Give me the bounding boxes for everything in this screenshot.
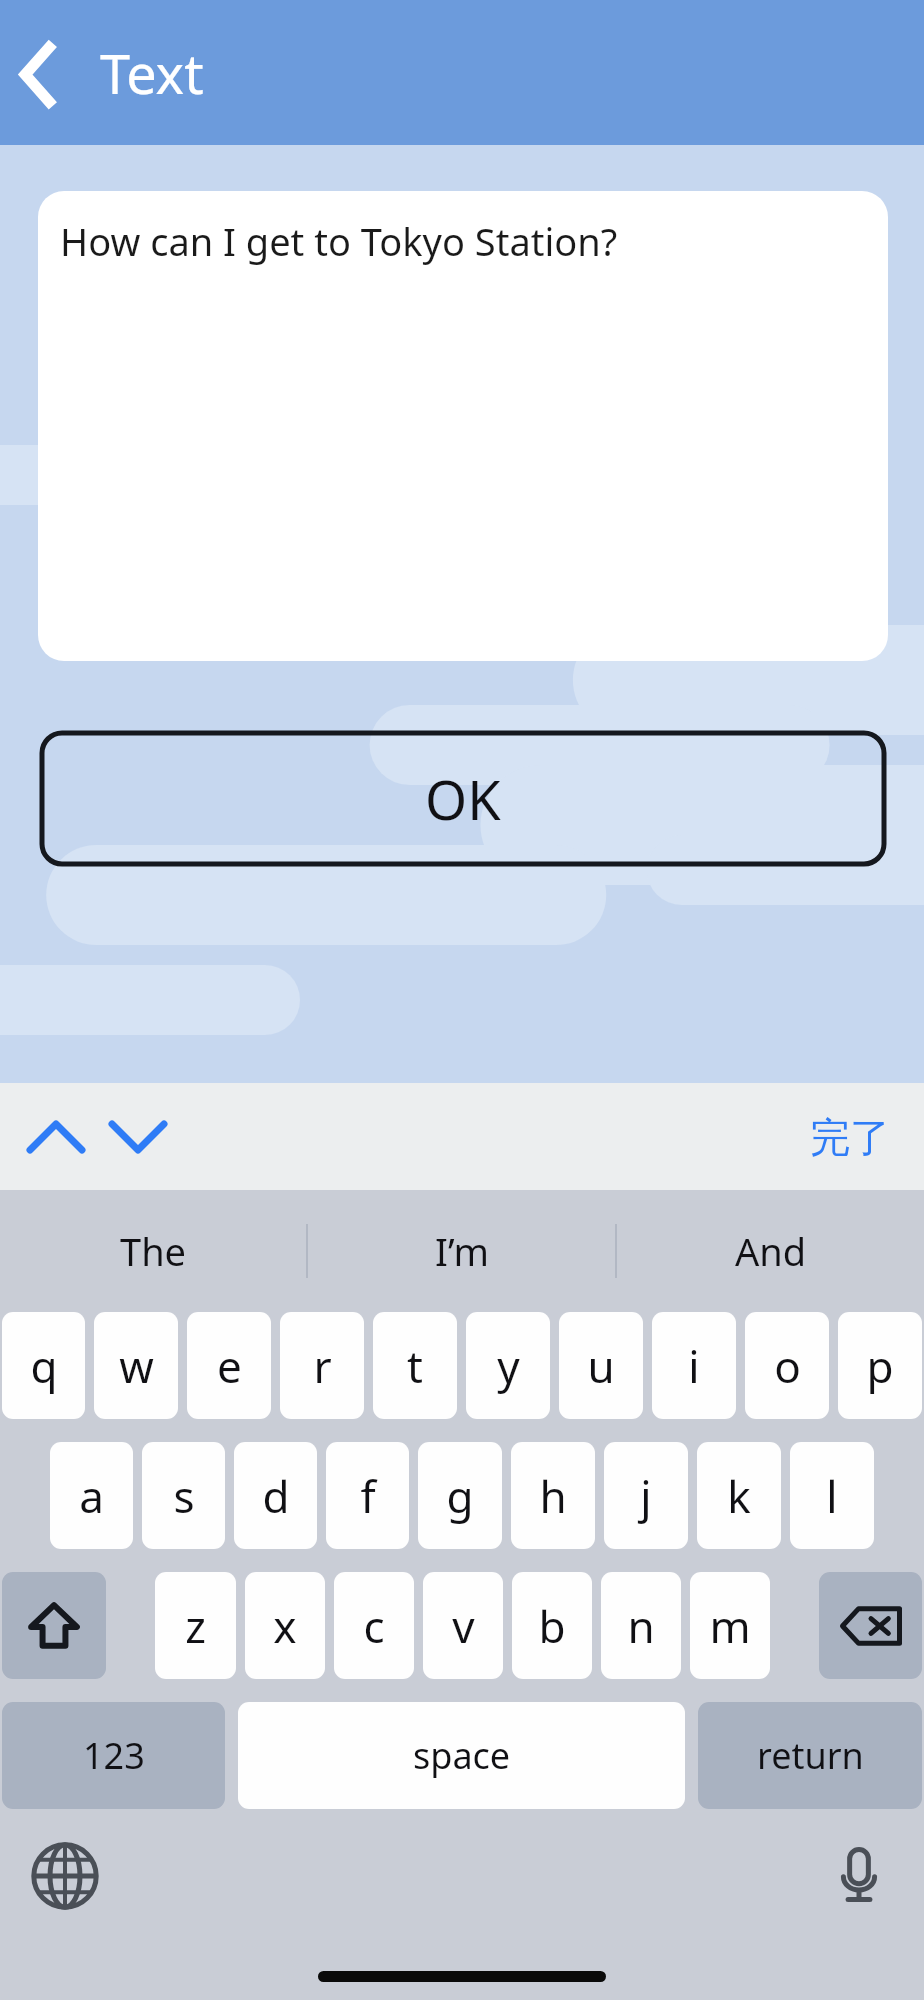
staticText: The <box>120 1225 187 1277</box>
button[interactable]: s <box>142 1442 225 1549</box>
button[interactable]: h <box>511 1442 595 1549</box>
button[interactable]: I’m <box>308 1190 615 1312</box>
button[interactable]: f <box>326 1442 409 1549</box>
staticText: And <box>735 1225 807 1277</box>
button[interactable]: And <box>617 1190 924 1312</box>
button[interactable]: n <box>601 1572 681 1679</box>
staticText: j <box>640 1466 652 1526</box>
staticText: 123 <box>83 1731 145 1780</box>
button[interactable]: Next field <box>104 1103 172 1171</box>
button[interactable]: a <box>50 1442 133 1549</box>
button[interactable]: j <box>604 1442 688 1549</box>
button[interactable]: x <box>245 1572 325 1679</box>
staticText: x <box>273 1596 297 1656</box>
button[interactable]: Previous field <box>22 1103 90 1171</box>
button[interactable]: Back <box>6 33 86 113</box>
button[interactable]: How can I get to Tokyo Station? <box>38 191 888 661</box>
button[interactable]: z <box>155 1572 236 1679</box>
staticText: c <box>363 1596 385 1656</box>
button[interactable]: space <box>238 1702 685 1809</box>
button[interactable]: d <box>234 1442 317 1549</box>
button[interactable]: p <box>838 1312 922 1419</box>
staticText: return <box>757 1731 864 1780</box>
button[interactable]: return <box>698 1702 922 1809</box>
staticText: o <box>774 1336 801 1396</box>
staticText: i <box>688 1336 700 1396</box>
staticText: z <box>185 1596 206 1656</box>
button[interactable]: b <box>512 1572 592 1679</box>
staticText: k <box>727 1466 751 1526</box>
button[interactable]: m <box>690 1572 770 1679</box>
staticText: w <box>119 1336 154 1396</box>
staticText: m <box>709 1596 751 1656</box>
button[interactable]: w <box>94 1312 178 1419</box>
staticText: p <box>866 1336 894 1396</box>
button[interactable]: Backspace <box>819 1572 922 1679</box>
staticText: 完了 <box>810 1112 890 1162</box>
staticText: e <box>217 1336 242 1396</box>
staticText: Text <box>100 36 204 110</box>
staticText: q <box>30 1336 58 1396</box>
staticText: t <box>407 1336 423 1396</box>
staticText: n <box>627 1596 655 1656</box>
button[interactable]: Dictation <box>820 1837 898 1915</box>
button[interactable]: c <box>334 1572 414 1679</box>
staticText: y <box>497 1336 520 1396</box>
button[interactable]: g <box>418 1442 502 1549</box>
staticText: OK <box>425 762 501 836</box>
button[interactable]: r <box>280 1312 364 1419</box>
staticText: l <box>826 1466 838 1526</box>
staticText: space <box>413 1731 511 1780</box>
button[interactable]: i <box>652 1312 736 1419</box>
button[interactable]: Shift <box>2 1572 106 1679</box>
staticText: u <box>587 1336 615 1396</box>
button[interactable]: 完了 <box>802 1106 898 1168</box>
button[interactable]: k <box>697 1442 781 1549</box>
button[interactable]: q <box>2 1312 85 1419</box>
button[interactable]: 123 <box>2 1702 225 1809</box>
staticText: d <box>262 1466 290 1526</box>
staticText: a <box>79 1466 104 1526</box>
staticText: b <box>538 1596 566 1656</box>
button[interactable]: l <box>790 1442 874 1549</box>
staticText: f <box>360 1466 376 1526</box>
staticText: How can I get to Tokyo Station? <box>60 215 618 267</box>
button[interactable]: OK <box>40 731 886 866</box>
button[interactable]: The <box>0 1190 306 1312</box>
button[interactable]: e <box>187 1312 271 1419</box>
button[interactable]: v <box>423 1572 503 1679</box>
staticText: I’m <box>435 1225 489 1277</box>
staticText: r <box>313 1336 332 1396</box>
button[interactable]: o <box>745 1312 829 1419</box>
button[interactable]: t <box>373 1312 457 1419</box>
button[interactable]: Switch keyboard language <box>26 1837 104 1915</box>
staticText: v <box>452 1596 475 1656</box>
button[interactable]: u <box>559 1312 643 1419</box>
button[interactable]: y <box>466 1312 550 1419</box>
staticText: s <box>173 1466 195 1526</box>
staticText: h <box>539 1466 567 1526</box>
staticText: g <box>446 1466 474 1526</box>
